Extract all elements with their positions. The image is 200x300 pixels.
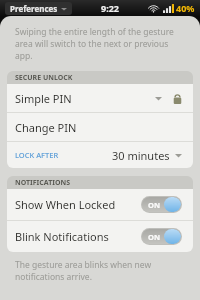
staticText: Simple PIN [15, 91, 72, 106]
button[interactable]: Toggle on [141, 196, 182, 213]
button[interactable]: Show When Locked [7, 189, 193, 220]
staticText: SECURE UNLOCK [15, 73, 73, 83]
button[interactable]: Preferences [5, 2, 72, 15]
staticText: LOCK AFTER [15, 150, 59, 160]
staticText: Preferences [10, 3, 58, 14]
other: Locked [173, 93, 182, 104]
staticText: ON [148, 232, 161, 242]
button[interactable]: Simple PIN [7, 84, 193, 112]
other: Signal strength [163, 4, 174, 13]
button[interactable]: Toggle on [141, 228, 182, 245]
button[interactable]: Change PIN [7, 113, 193, 141]
staticText: Swiping the entire length of the gesture… [15, 26, 186, 62]
staticText: 30 minutes [112, 148, 170, 163]
staticText: 9:22 [101, 2, 119, 14]
staticText: Change PIN [15, 120, 77, 135]
staticText: The gesture area blinks when new notific… [15, 259, 186, 283]
button[interactable]: Blink Notifications [7, 221, 193, 252]
staticText: ON [148, 200, 161, 210]
staticText: NOTIFICATIONS [15, 178, 71, 188]
other: Wi-Fi [148, 4, 159, 13]
staticText: Show When Locked [15, 197, 116, 212]
button[interactable]: LOCK AFTER [7, 142, 193, 168]
staticText: Blink Notifications [15, 229, 109, 244]
staticText: 40% [176, 2, 195, 14]
